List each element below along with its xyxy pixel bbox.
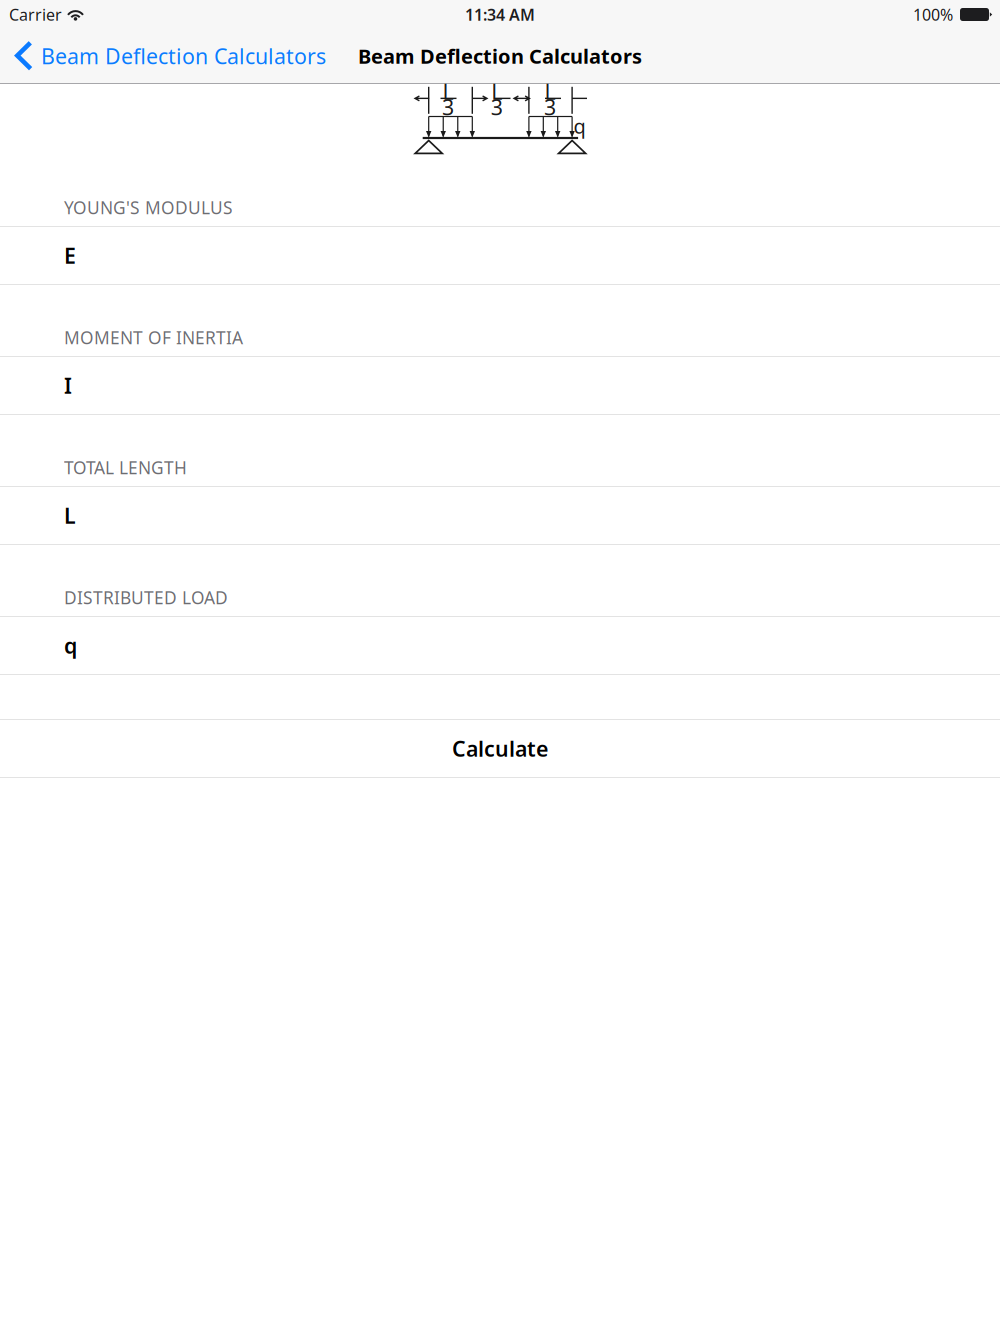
staticText: 100% (913, 4, 953, 25)
button[interactable]: L (0, 487, 1000, 544)
staticText: YOUNG'S MODULUS (64, 196, 233, 219)
staticText: I (64, 371, 72, 400)
staticText: 3 (544, 93, 556, 121)
staticText: q (573, 113, 585, 139)
staticText: Calculate (452, 734, 548, 763)
staticText: 3 (442, 93, 454, 121)
staticText: L (544, 77, 555, 105)
staticText: TOTAL LENGTH (64, 456, 187, 479)
staticText: L (491, 77, 502, 105)
staticText: 11:34 AM (465, 4, 535, 25)
staticText: 3 (491, 93, 503, 121)
staticText: L (442, 77, 453, 105)
button[interactable]: E (0, 227, 1000, 284)
button[interactable]: q (0, 617, 1000, 674)
staticText: Beam Deflection Calculators (358, 43, 642, 69)
button[interactable]: I (0, 357, 1000, 414)
staticText: q (64, 631, 77, 660)
staticText: Carrier (9, 4, 62, 25)
staticText: MOMENT OF INERTIA (64, 326, 243, 349)
button[interactable]: Calculate (0, 720, 1000, 777)
staticText: E (64, 241, 76, 270)
button[interactable]: Beam Deflection Calculators (0, 29, 326, 83)
staticText: DISTRIBUTED LOAD (64, 586, 228, 609)
staticText: L (64, 501, 76, 530)
staticText: Beam Deflection Calculators (41, 42, 326, 70)
